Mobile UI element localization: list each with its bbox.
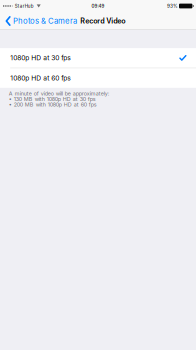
staticText: 1080p HD at 60 fps <box>10 74 71 82</box>
staticText: 09:49 <box>91 3 104 9</box>
staticText: A minute of video will be approximately: <box>9 90 110 97</box>
staticText: 93% <box>167 3 178 9</box>
staticText: Photos & Camera <box>13 16 77 26</box>
staticText: Record Video <box>80 17 125 25</box>
staticText: • 200 MB with 1080p HD at 60 fps <box>9 101 97 108</box>
staticText: • 130 MB with 1080p HD at 30 fps <box>9 96 96 102</box>
button[interactable]: Photos & Camera <box>0 12 80 30</box>
staticText: StarHub <box>15 3 34 9</box>
button[interactable]: 1080p HD at 30 fps <box>0 48 196 68</box>
button[interactable]: 1080p HD at 60 fps <box>0 68 196 88</box>
staticText: 1080p HD at 30 fps <box>10 54 71 62</box>
